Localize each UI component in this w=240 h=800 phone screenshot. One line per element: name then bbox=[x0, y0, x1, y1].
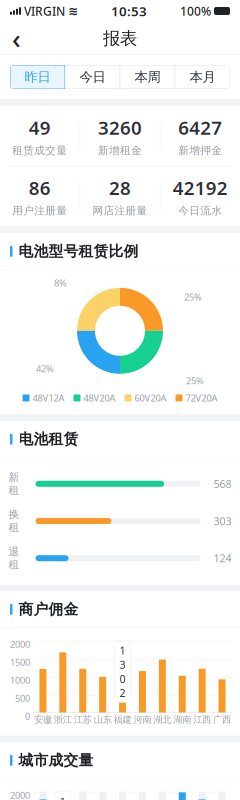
staticText: 72V20A bbox=[185, 392, 217, 404]
staticText: 报表 bbox=[103, 28, 137, 49]
staticText: 商户佣金 bbox=[18, 600, 78, 618]
staticText: 1408 bbox=[60, 794, 66, 800]
staticText: 60V20A bbox=[134, 392, 166, 404]
staticText: 退租 bbox=[8, 545, 19, 571]
staticText: 1302 bbox=[119, 643, 125, 700]
staticText: 江苏 bbox=[74, 714, 92, 725]
staticText: 124 bbox=[213, 551, 231, 565]
staticText: 303 bbox=[213, 514, 231, 528]
staticText: 42% bbox=[36, 362, 54, 375]
staticText: 500 bbox=[15, 692, 30, 704]
staticText: 租赁成交量 bbox=[12, 144, 67, 157]
staticText: 42192 bbox=[173, 175, 228, 200]
staticText: 本月 bbox=[189, 69, 215, 85]
staticText: 568 bbox=[213, 477, 231, 491]
staticText: 28 bbox=[109, 175, 131, 200]
staticText: 10:53 bbox=[111, 2, 147, 20]
staticText: 湖北 bbox=[153, 714, 171, 725]
staticText: 城市成交量 bbox=[18, 751, 93, 769]
button[interactable]: 本月 bbox=[175, 65, 230, 89]
staticText: 安徽 bbox=[34, 714, 52, 725]
staticText: 广西 bbox=[213, 714, 231, 725]
staticText: 今日流水 bbox=[178, 204, 222, 217]
button[interactable]: Back bbox=[0, 22, 46, 54]
staticText: 100% bbox=[180, 3, 211, 19]
staticText: 河南 bbox=[133, 714, 151, 725]
staticText: 8% bbox=[54, 277, 67, 289]
staticText: 湖南 bbox=[173, 714, 191, 725]
button[interactable]: 今日 bbox=[65, 65, 120, 89]
staticText: 昨日 bbox=[24, 69, 50, 85]
staticText: 本周 bbox=[134, 69, 160, 85]
staticText: 新增租金 bbox=[98, 144, 142, 157]
staticText: 2000 bbox=[10, 789, 30, 800]
button[interactable]: 本周 bbox=[120, 65, 175, 89]
button[interactable]: 昨日 bbox=[10, 65, 65, 89]
staticText: 1000 bbox=[10, 674, 30, 686]
staticText: 网店注册量 bbox=[92, 204, 147, 217]
staticText: 今日 bbox=[79, 69, 105, 85]
staticText: 48V12A bbox=[32, 392, 64, 404]
staticText: 电池型号租赁比例 bbox=[18, 242, 138, 260]
staticText: 浙江 bbox=[54, 714, 72, 725]
staticText: 25% bbox=[186, 374, 204, 387]
staticText: 1500 bbox=[10, 656, 30, 668]
staticText: 6427 bbox=[178, 115, 222, 140]
staticText: 0 bbox=[25, 710, 30, 722]
staticText: 山东 bbox=[94, 714, 112, 725]
staticText: 福建 bbox=[113, 714, 131, 725]
staticText: 用户注册量 bbox=[12, 204, 67, 217]
staticText: 新租 bbox=[8, 471, 19, 497]
staticText: 电池租赁 bbox=[18, 430, 78, 448]
staticText: VIRGIN bbox=[24, 3, 65, 19]
staticText: 新增押金 bbox=[178, 144, 222, 157]
staticText: ‹ bbox=[12, 21, 21, 56]
staticText: 2000 bbox=[10, 638, 30, 650]
staticText: 86 bbox=[29, 175, 51, 200]
staticText: 49 bbox=[29, 115, 51, 140]
staticText: 换租 bbox=[8, 508, 19, 534]
staticText: 江西 bbox=[193, 714, 211, 725]
staticText: 3260 bbox=[98, 115, 142, 140]
staticText: 25% bbox=[184, 291, 202, 303]
staticText: 48V20A bbox=[83, 392, 115, 404]
staticText: ≋ bbox=[68, 4, 78, 18]
